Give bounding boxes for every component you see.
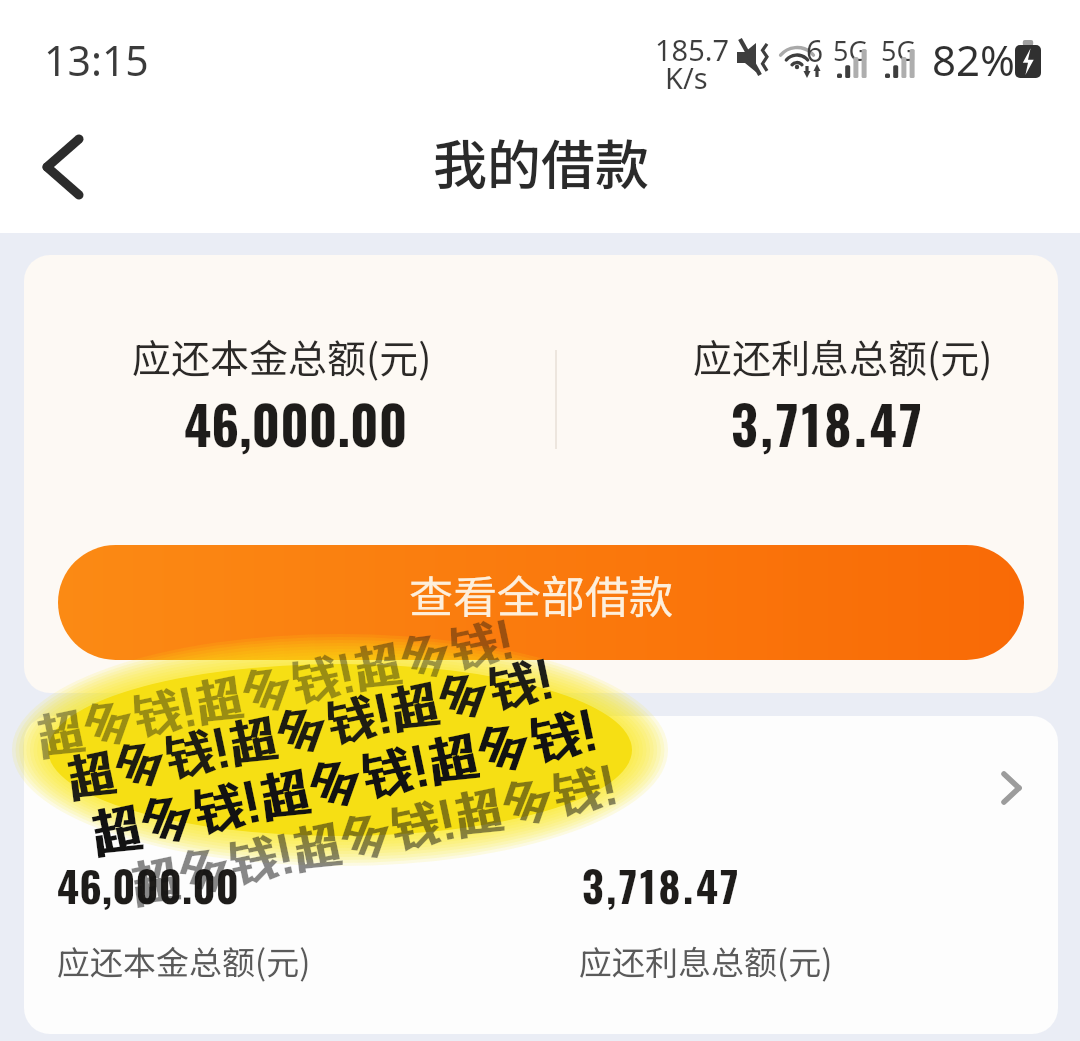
staticText: 3,718.47 bbox=[582, 854, 742, 916]
staticText: 超多钱!超多钱!超多钱! bbox=[123, 755, 622, 916]
button[interactable]: Back bbox=[18, 123, 106, 211]
staticText: 46,000.00 bbox=[184, 385, 408, 462]
button[interactable]: Open loan detail bbox=[24, 716, 1058, 1034]
staticText: 185.7 bbox=[655, 30, 730, 69]
button[interactable]: 查看全部借款 bbox=[58, 545, 1024, 660]
staticText: 超多钱!超多钱!超多钱! bbox=[29, 610, 518, 768]
staticText: 我的借款 bbox=[433, 122, 649, 200]
staticText: 82% bbox=[932, 31, 1015, 88]
staticText: 应还本金总额(元) bbox=[132, 328, 432, 384]
staticText: 超多钱!超多钱!超多钱! bbox=[83, 699, 602, 866]
staticText: K/s bbox=[665, 58, 708, 97]
staticText: 5G bbox=[881, 32, 917, 69]
staticText: 查看全部借款 bbox=[409, 562, 673, 626]
staticText: 5G bbox=[833, 32, 869, 69]
other: Open loan detail bbox=[987, 766, 1031, 810]
staticText: 6 bbox=[806, 30, 824, 71]
staticText: 13:15 bbox=[44, 32, 149, 88]
staticText: 应还利息总额(元) bbox=[579, 937, 833, 985]
staticText: 超多钱!超多钱!超多钱! bbox=[59, 649, 558, 810]
staticText: 应还本金总额(元) bbox=[57, 937, 311, 985]
staticText: 46,000.00 bbox=[57, 854, 240, 916]
staticText: 应还利息总额(元) bbox=[693, 328, 993, 384]
staticText: 3,718.47 bbox=[731, 385, 925, 462]
